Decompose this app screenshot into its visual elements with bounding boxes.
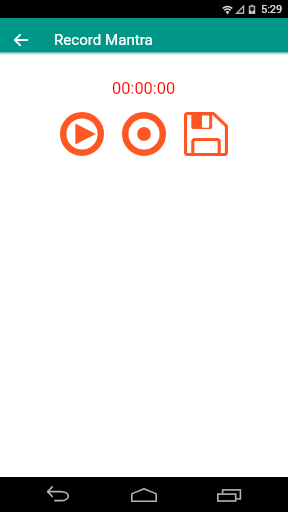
staticText: 00:00:00 (112, 79, 176, 98)
staticText: 5:29 (261, 3, 283, 16)
button[interactable]: Play (60, 112, 104, 156)
button[interactable]: Recent apps (203, 477, 255, 512)
button[interactable]: Save (184, 112, 228, 156)
button[interactable]: Home (118, 477, 170, 512)
staticText: Record Mantra (54, 31, 153, 49)
button[interactable]: Back (33, 477, 85, 512)
button[interactable]: Navigate up (0, 23, 41, 57)
button[interactable]: Record (122, 112, 166, 156)
